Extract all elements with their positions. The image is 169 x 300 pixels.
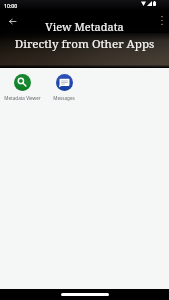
staticText: Messages: [53, 95, 75, 101]
button[interactable]: Messages: [43, 68, 85, 105]
button[interactable]: More options: [154, 11, 169, 29]
staticText: Directly from Other Apps: [0, 36, 169, 52]
staticText: View Metadata: [0, 19, 169, 34]
staticText: 10:00: [4, 2, 18, 9]
button[interactable]: Metadata Viewer: [1, 68, 43, 105]
staticText: Metadata Viewer: [4, 95, 41, 101]
button[interactable]: Back: [2, 11, 22, 31]
